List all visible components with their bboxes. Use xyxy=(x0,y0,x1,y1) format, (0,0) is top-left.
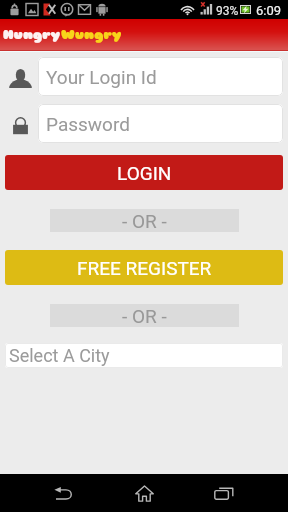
staticText: 6:09 xyxy=(256,3,282,18)
button[interactable]: LOGIN xyxy=(5,155,283,190)
button[interactable]: Recent apps xyxy=(192,474,256,512)
button[interactable]: Select A City xyxy=(5,343,283,368)
staticText: Select A City xyxy=(9,345,110,366)
staticText: Password xyxy=(46,113,130,135)
staticText: Hungry xyxy=(3,26,61,43)
button[interactable]: Your Login Id xyxy=(38,57,283,96)
staticText: Your Login Id xyxy=(46,66,157,88)
staticText: LOGIN xyxy=(117,162,172,184)
staticText: FREE REGISTER xyxy=(77,257,212,279)
staticText: 93% xyxy=(216,4,239,18)
staticText: - OR - xyxy=(122,305,167,327)
staticText: - OR - xyxy=(122,210,167,232)
button[interactable]: Home xyxy=(112,474,176,512)
staticText: Wungry xyxy=(61,26,122,43)
button[interactable]: FREE REGISTER xyxy=(5,250,283,285)
button[interactable]: Back xyxy=(32,474,96,512)
button[interactable]: Password xyxy=(38,104,283,143)
